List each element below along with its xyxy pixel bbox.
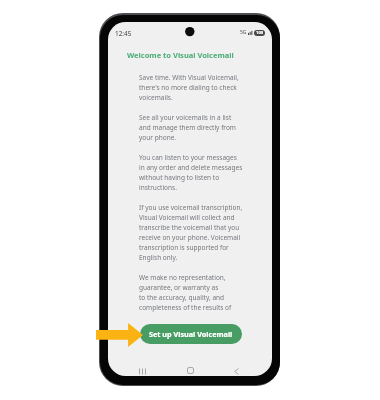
button[interactable]: Recent apps [135, 364, 149, 376]
staticText: 100 [256, 30, 264, 36]
staticText: Save time. With Visual Voicemail, there'… [139, 73, 239, 102]
staticText: You can listen to your messages in any o… [139, 153, 243, 192]
staticText: 5G [240, 29, 247, 36]
staticText: 12:45 [115, 29, 132, 38]
staticText: Welcome to Visual Voicemail [127, 50, 234, 60]
staticText: We make no representation, guarantee, or… [139, 273, 232, 312]
staticText: See all your voicemails in a list and ma… [139, 113, 236, 142]
button[interactable]: Set up Visual Voicemail [140, 324, 242, 344]
button[interactable]: Home [183, 363, 197, 376]
staticText: Set up Visual Voicemail [149, 329, 233, 339]
staticText: If you use voicemail transcription, Visu… [139, 203, 243, 262]
button[interactable]: Back [229, 364, 243, 376]
